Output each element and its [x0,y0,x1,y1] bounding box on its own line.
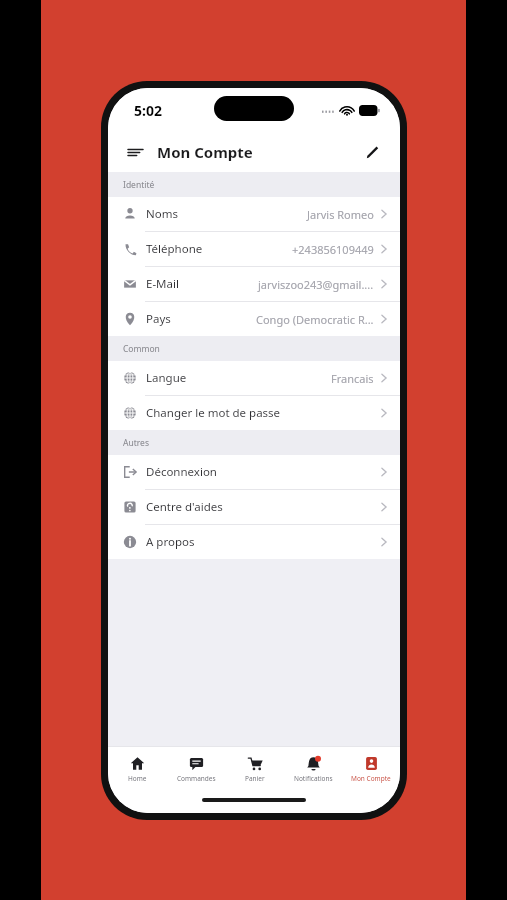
staticText: Congo (Democratic R... [256,312,374,327]
staticText: Noms [146,206,178,222]
button[interactable]: Téléphone [108,232,400,266]
button[interactable]: Pays [108,302,400,336]
button[interactable]: Centre d'aides [108,490,400,524]
staticText: Panier [245,774,265,783]
staticText: Notifications [294,774,333,783]
button[interactable]: Home [108,747,167,791]
button[interactable]: Déconnexion [108,455,400,489]
button[interactable]: Menu [122,139,148,165]
staticText: Déconnexion [146,464,217,480]
button[interactable]: Panier [226,747,284,791]
staticText: Mon Compte [157,142,253,162]
staticText: +243856109449 [292,242,374,257]
button[interactable]: Notifications [284,747,342,791]
staticText: Langue [146,370,187,386]
staticText: Common [123,343,160,355]
staticText: Téléphone [146,241,203,257]
staticText: 5:02 [134,101,162,120]
staticText: Pays [146,311,171,327]
button[interactable]: Edit [358,138,386,166]
staticText: Changer le mot de passe [146,405,281,421]
button[interactable]: Mon Compte [342,747,400,791]
staticText: Centre d'aides [146,499,223,515]
staticText: Francais [331,371,374,386]
staticText: E-Mail [146,276,179,292]
staticText: Jarvis Romeo [307,207,374,222]
staticText: Home [128,774,147,783]
staticText: Autres [123,437,149,449]
staticText: jarviszoo243@gmail.... [258,277,374,292]
button[interactable]: Langue [108,361,400,395]
staticText: Mon Compte [351,774,391,783]
staticText: Identité [123,179,155,191]
staticText: Commandes [177,774,216,783]
button[interactable]: Noms [108,197,400,231]
button[interactable]: Changer le mot de passe [108,396,400,430]
button[interactable]: Commandes [167,747,226,791]
button[interactable]: A propos [108,525,400,559]
staticText: A propos [146,534,195,550]
button[interactable]: E-Mail [108,267,400,301]
